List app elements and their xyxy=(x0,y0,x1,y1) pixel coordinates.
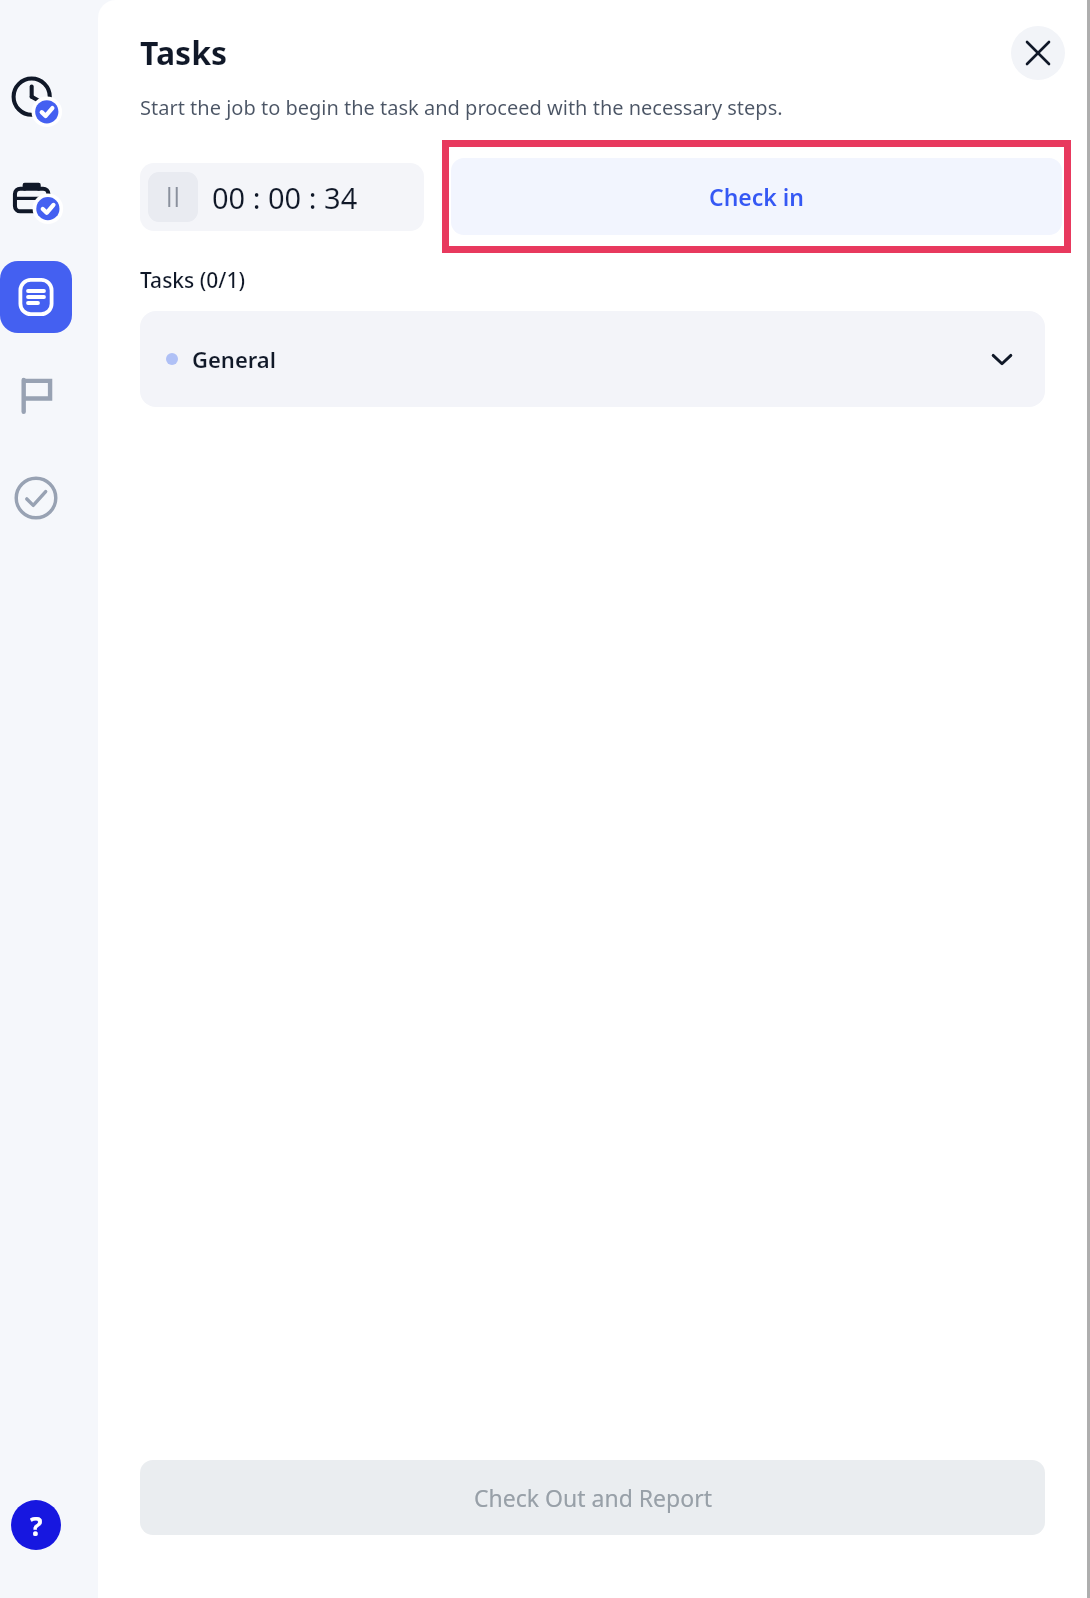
staticText: 00 : 00 : 34 xyxy=(212,178,358,217)
staticText: Check in xyxy=(709,181,805,212)
other: Pause xyxy=(148,172,198,222)
staticText: Start the job to begin the task and proc… xyxy=(140,94,783,121)
staticText: Tasks (0/1) xyxy=(140,266,245,295)
button[interactable]: Time tracking xyxy=(3,68,69,134)
button[interactable]: Help xyxy=(11,1500,61,1550)
button[interactable]: Pause xyxy=(140,163,424,231)
staticText: General xyxy=(192,344,276,374)
staticText: ? xyxy=(30,1508,43,1543)
button[interactable]: General xyxy=(140,311,1045,407)
button[interactable]: Close xyxy=(1011,26,1065,80)
button[interactable]: Tasks xyxy=(0,261,72,333)
button[interactable]: Check in xyxy=(451,158,1062,235)
staticText: Tasks xyxy=(140,31,228,75)
staticText: Check Out and Report xyxy=(474,1482,712,1513)
button[interactable]: Check Out and Report xyxy=(140,1460,1045,1535)
other: Expand xyxy=(985,342,1019,376)
button[interactable]: Jobs xyxy=(3,167,69,233)
button[interactable]: Flags xyxy=(3,362,69,428)
button[interactable]: Completed xyxy=(3,465,69,531)
